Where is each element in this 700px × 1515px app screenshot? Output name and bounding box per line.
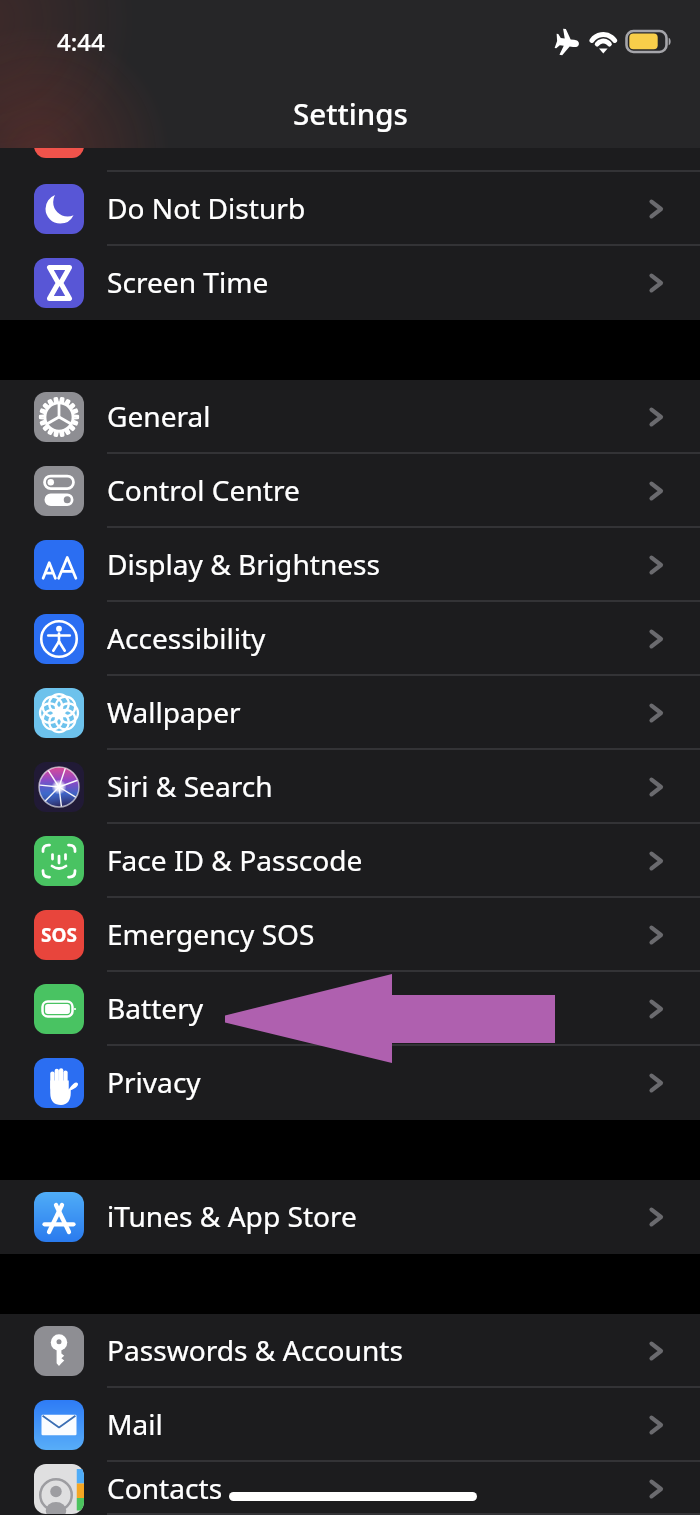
- button[interactable]: Accessibility: [0, 602, 700, 676]
- staticText: Face ID & Passcode: [107, 841, 363, 879]
- staticText: iTunes & App Store: [107, 1197, 357, 1235]
- staticText: Contacts: [107, 1469, 223, 1507]
- staticText: Wallpaper: [107, 693, 241, 731]
- button[interactable]: Passwords & Accounts: [0, 1314, 700, 1388]
- button[interactable]: Do Not Disturb: [0, 172, 700, 246]
- staticText: Accessibility: [107, 619, 266, 657]
- staticText: Siri & Search: [107, 767, 273, 805]
- button[interactable]: Screen Time: [0, 246, 700, 320]
- staticText: Control Centre: [107, 471, 300, 509]
- staticText: Emergency SOS: [107, 915, 315, 953]
- button[interactable]: Mail: [0, 1388, 700, 1462]
- button[interactable]: Siri & Search: [0, 750, 700, 824]
- button[interactable]: Contacts: [0, 1462, 700, 1515]
- staticText: Do Not Disturb: [107, 189, 306, 227]
- staticText: Battery: [107, 989, 204, 1027]
- button[interactable]: General: [0, 380, 700, 454]
- button[interactable]: iTunes & App Store: [0, 1180, 700, 1254]
- staticText: Passwords & Accounts: [107, 1331, 403, 1369]
- staticText: SOS: [41, 922, 77, 948]
- staticText: Display & Brightness: [107, 545, 381, 583]
- button[interactable]: Control Centre: [0, 454, 700, 528]
- button[interactable]: Privacy: [0, 1046, 700, 1120]
- staticText: Privacy: [107, 1063, 201, 1101]
- staticText: Screen Time: [107, 263, 269, 301]
- button[interactable]: Battery: [0, 972, 700, 1046]
- staticText: Mail: [107, 1405, 163, 1443]
- staticText: 4:44: [57, 25, 105, 58]
- button[interactable]: Wallpaper: [0, 676, 700, 750]
- staticText: Settings: [293, 93, 408, 133]
- button[interactable]: Display & Brightness: [0, 528, 700, 602]
- button[interactable]: SOS: [0, 898, 700, 972]
- staticText: General: [107, 397, 211, 435]
- button[interactable]: Face ID & Passcode: [0, 824, 700, 898]
